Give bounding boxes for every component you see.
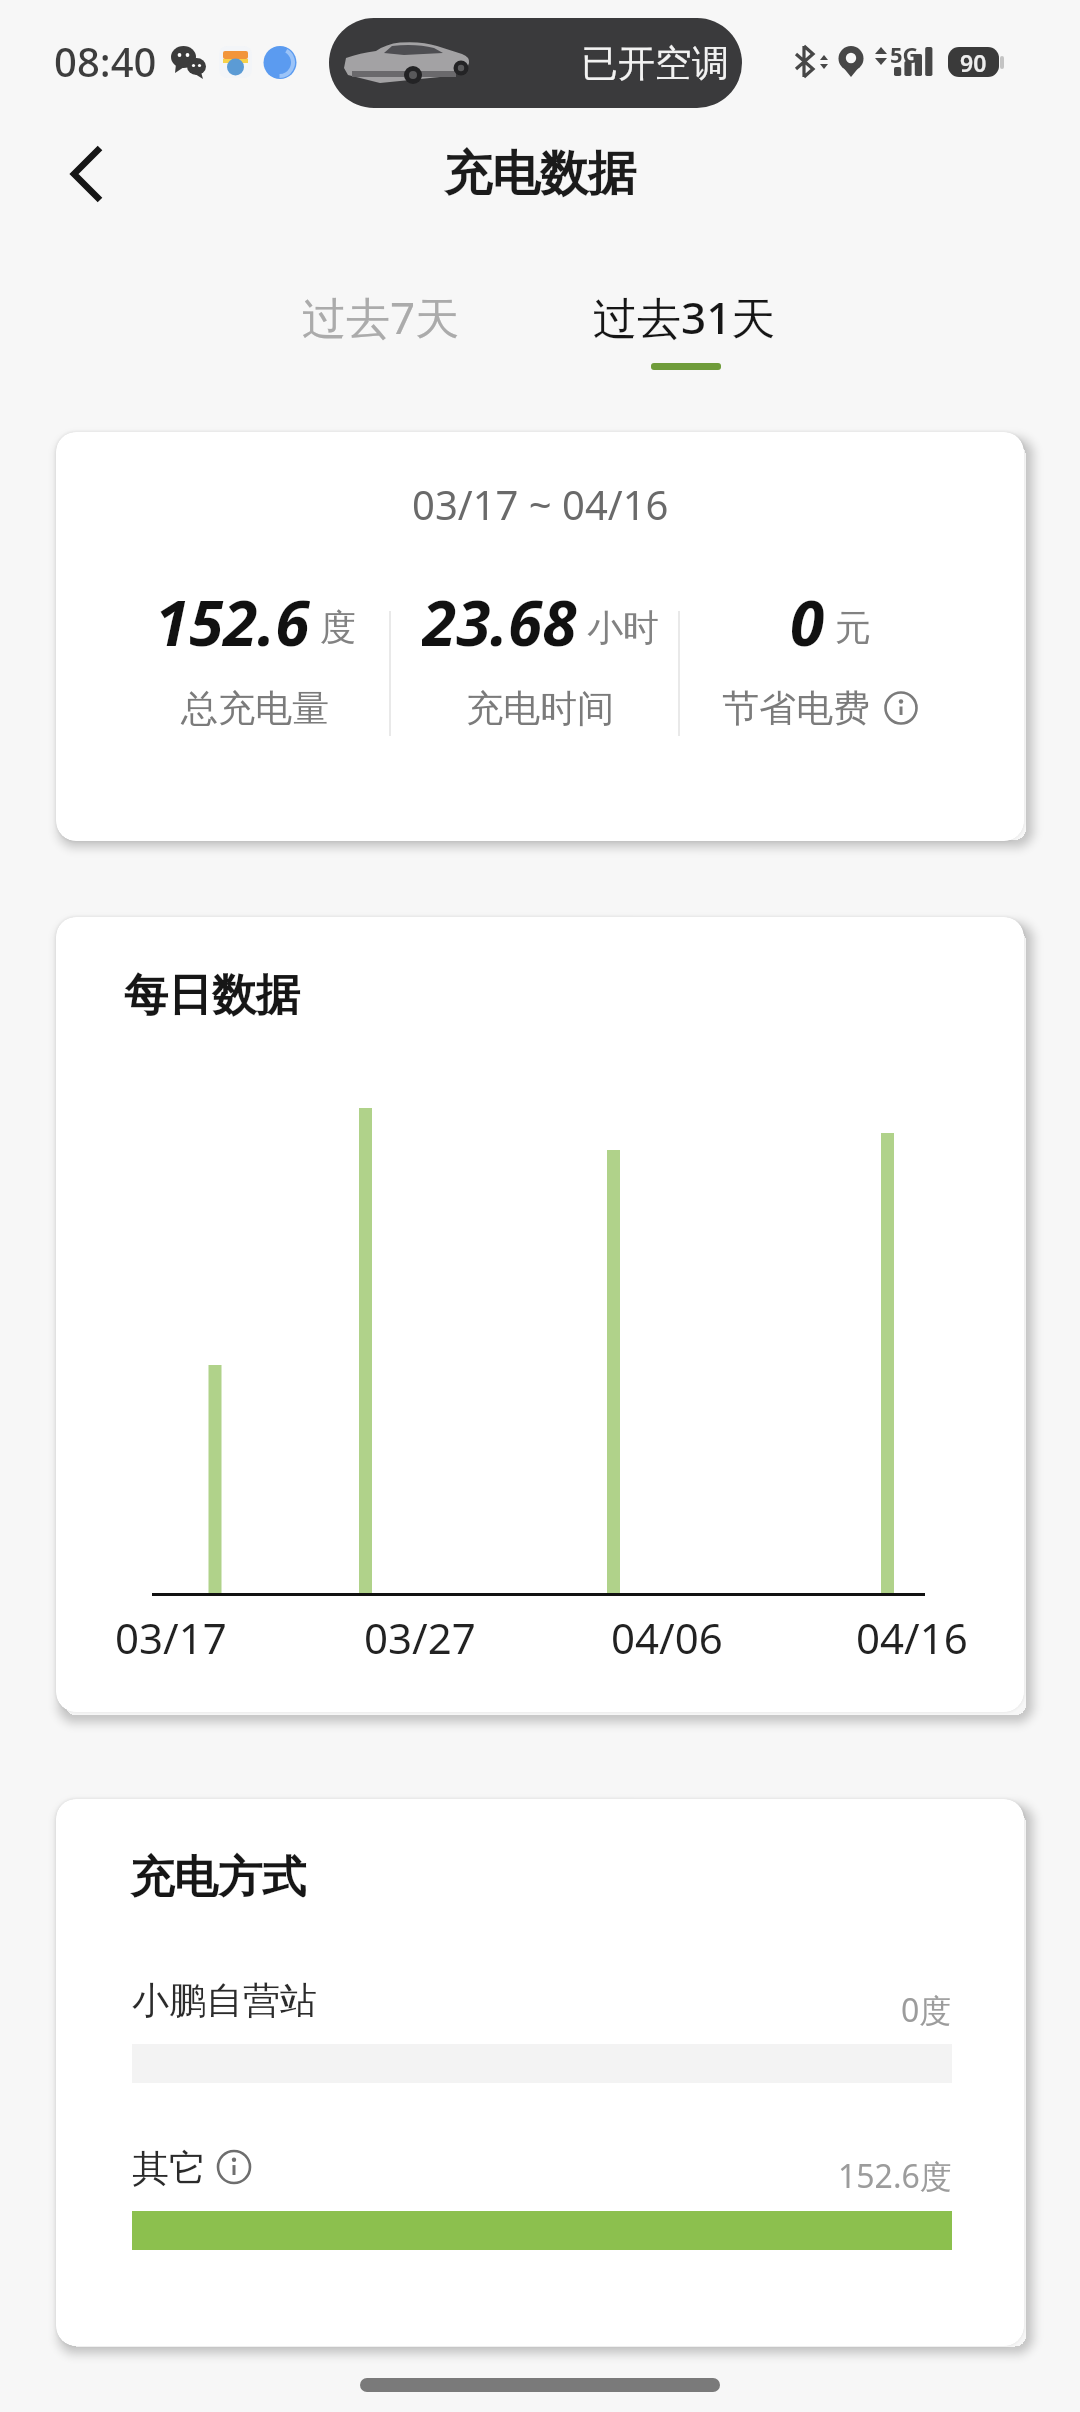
- staticText: 90: [960, 47, 987, 77]
- staticText: 其它: [132, 2145, 206, 2192]
- button[interactable]: 过去7天: [251, 277, 511, 357]
- button[interactable]: [56, 132, 128, 216]
- staticText: 过去7天: [302, 287, 460, 347]
- staticText: 5G: [890, 39, 919, 69]
- button[interactable]: [216, 2149, 252, 2185]
- staticText: 04/16: [856, 1609, 968, 1666]
- staticText: 总充电量: [181, 685, 329, 732]
- staticText: 152.6: [155, 580, 310, 658]
- staticText: 充电时间: [466, 685, 614, 732]
- staticText: 每日数据: [124, 968, 300, 1023]
- staticText: 元: [835, 605, 871, 650]
- button[interactable]: 过去31天: [544, 277, 824, 357]
- staticText: 03/17: [115, 1609, 227, 1666]
- staticText: 小鹏自营站: [132, 1977, 317, 2024]
- staticText: 23.68: [422, 580, 577, 658]
- button[interactable]: 已开空调: [329, 18, 742, 108]
- staticText: 08:40: [54, 34, 157, 88]
- staticText: 152.6度: [838, 2154, 952, 2198]
- staticText: 充电方式: [130, 1850, 306, 1905]
- staticText: 0: [790, 580, 825, 658]
- staticText: 充电数据: [444, 144, 636, 204]
- staticText: 03/27: [364, 1609, 476, 1666]
- staticText: 03/17 ~ 04/16: [412, 477, 669, 531]
- staticText: 度: [320, 605, 356, 650]
- staticText: 已开空调: [581, 40, 729, 87]
- staticText: 0度: [901, 1988, 952, 2032]
- staticText: 04/06: [611, 1609, 723, 1666]
- staticText: 过去31天: [593, 287, 776, 347]
- staticText: 小时: [587, 605, 659, 650]
- staticText: 节省电费: [722, 685, 870, 732]
